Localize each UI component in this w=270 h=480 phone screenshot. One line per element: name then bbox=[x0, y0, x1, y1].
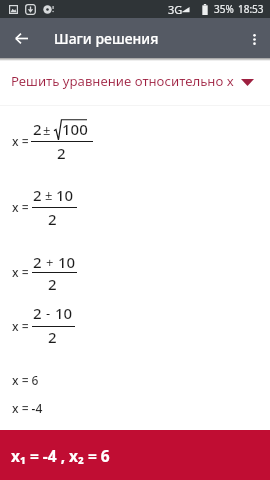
button[interactable]: Back bbox=[0, 18, 44, 58]
staticText: Шаги решения bbox=[54, 29, 159, 48]
staticText: 10 bbox=[58, 252, 76, 272]
button[interactable]: Решить уравнение относительно x bbox=[0, 61, 270, 106]
staticText: 2 bbox=[48, 274, 57, 294]
staticText: 2 bbox=[57, 143, 66, 163]
staticText: ± bbox=[43, 121, 51, 139]
staticText: 10 bbox=[56, 185, 74, 205]
staticText: ± bbox=[45, 186, 53, 204]
staticText: 2 bbox=[48, 327, 57, 347]
staticText: x = 6 bbox=[12, 372, 39, 388]
staticText: x = bbox=[12, 318, 29, 334]
staticText: 35% bbox=[214, 2, 234, 16]
staticText: x₁ = -4 , x₂ = 6 bbox=[11, 445, 110, 466]
staticText: x = -4 bbox=[12, 400, 43, 416]
button[interactable]: x₁ = -4 , x₂ = 6 bbox=[0, 430, 270, 480]
staticText: 2 bbox=[33, 252, 42, 272]
button[interactable]: More options bbox=[240, 18, 270, 58]
staticText: 100 bbox=[62, 119, 88, 139]
staticText: 2 bbox=[33, 185, 42, 205]
staticText: 10 bbox=[55, 303, 73, 323]
staticText: x = bbox=[12, 264, 29, 280]
staticText: Решить уравнение относительно x bbox=[11, 72, 234, 90]
staticText: 18:53 bbox=[238, 2, 264, 16]
staticText: - bbox=[46, 304, 51, 322]
staticText: 2 bbox=[48, 209, 57, 229]
staticText: x = bbox=[12, 133, 29, 149]
staticText: x = bbox=[12, 199, 29, 215]
staticText: 3G bbox=[168, 2, 183, 17]
staticText: 2 bbox=[33, 303, 42, 323]
staticText: + bbox=[46, 253, 54, 271]
staticText: 2 bbox=[33, 119, 42, 139]
